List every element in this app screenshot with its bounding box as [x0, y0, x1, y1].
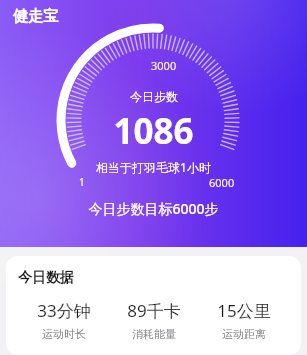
- staticText: 89千卡: [127, 299, 181, 322]
- staticText: 6000: [209, 175, 235, 190]
- staticText: 今日数据: [18, 269, 74, 287]
- button[interactable]: 今日数据: [6, 256, 301, 355]
- button[interactable]: 15公里: [199, 299, 289, 341]
- staticText: 消耗能量: [132, 327, 176, 341]
- button[interactable]: 今日步数目标6000步: [88, 199, 219, 218]
- staticText: 相当于打羽毛球1小时: [96, 159, 211, 175]
- button[interactable]: 33分钟: [18, 299, 109, 341]
- button[interactable]: 健走宝: [13, 7, 58, 26]
- staticText: 运动时长: [42, 327, 86, 341]
- staticText: 今日步数: [130, 89, 178, 104]
- button[interactable]: 89千卡: [109, 299, 199, 341]
- staticText: 运动距离: [222, 327, 266, 341]
- staticText: 3000: [151, 58, 177, 73]
- staticText: 15公里: [217, 299, 271, 322]
- staticText: 1086: [113, 107, 194, 155]
- staticText: 33分钟: [37, 299, 91, 322]
- staticText: 1: [79, 175, 85, 189]
